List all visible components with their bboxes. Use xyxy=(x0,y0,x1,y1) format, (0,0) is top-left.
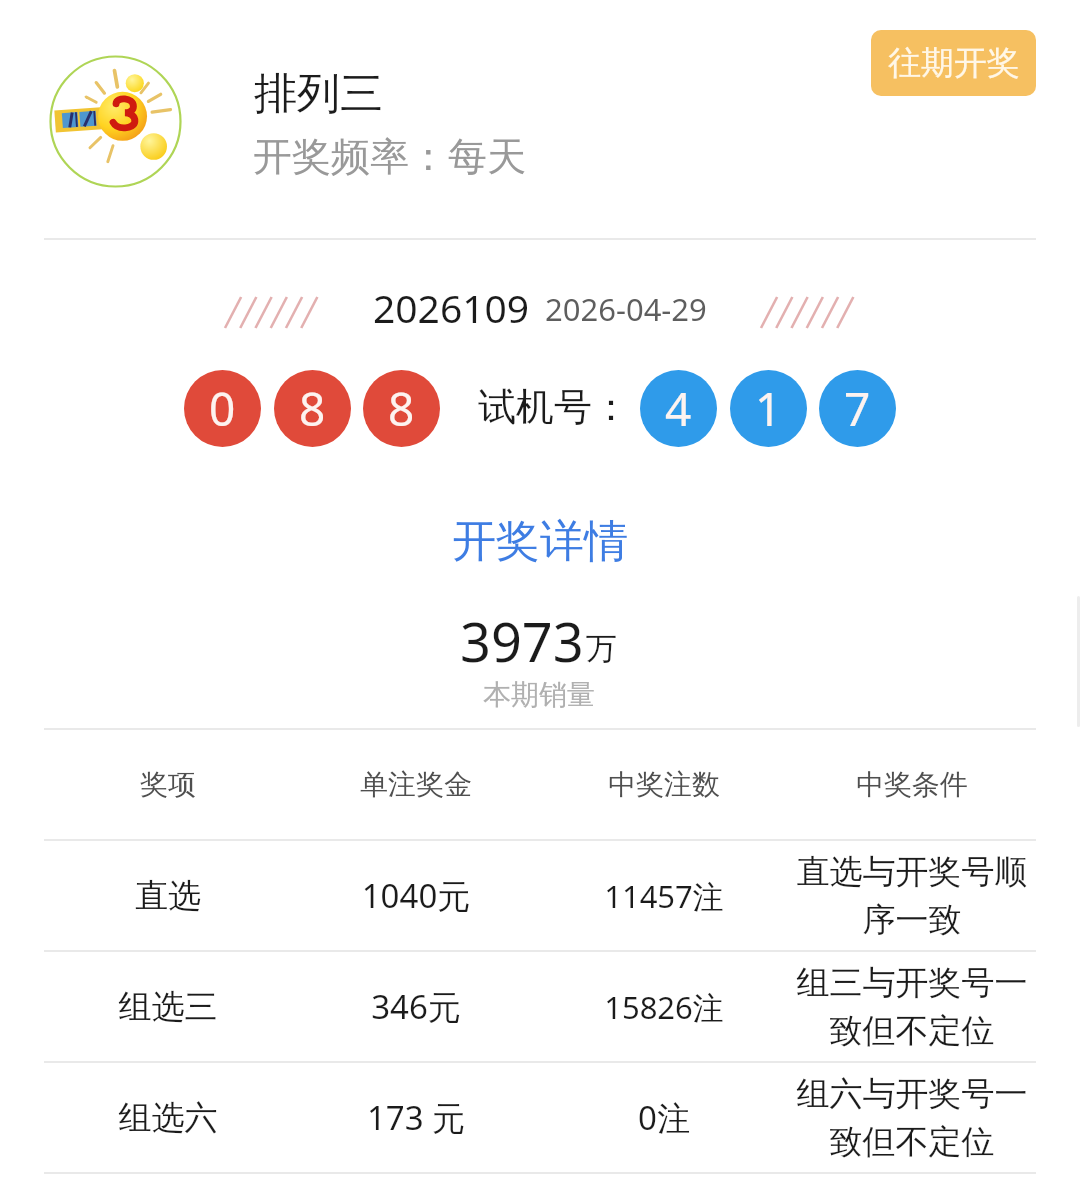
staticText: 组六与开奖号一致但不定位 xyxy=(793,1073,1031,1163)
other: 排列三 彩票图标 xyxy=(49,55,182,188)
staticText: 单注奖金 xyxy=(292,767,540,802)
button[interactable]: 往期开奖 xyxy=(871,30,1036,96)
button[interactable]: 排列三 彩票图标 xyxy=(44,20,644,220)
staticText: 万 xyxy=(586,629,617,668)
staticText: 7 xyxy=(844,377,871,440)
staticText: 试机号： xyxy=(478,383,630,431)
staticText: 奖项 xyxy=(44,767,292,802)
staticText: 15826注 xyxy=(540,986,788,1028)
staticText: 0注 xyxy=(540,1095,788,1140)
staticText: 开奖频率：每天 xyxy=(253,132,526,181)
staticText: 173 元 xyxy=(292,1095,540,1140)
staticText: 中奖条件 xyxy=(793,767,1031,802)
staticText: 往期开奖 xyxy=(888,42,1020,84)
staticText: 8 xyxy=(299,377,326,440)
staticText: 直选与开奖号顺序一致 xyxy=(793,851,1031,941)
staticText: 0 xyxy=(209,377,236,440)
staticText: 11457注 xyxy=(540,875,788,917)
staticText: 2026-04-29 xyxy=(545,288,707,330)
staticText: 1040元 xyxy=(292,873,540,918)
staticText: 直选 xyxy=(44,875,292,917)
staticText: 1 xyxy=(755,377,782,440)
staticText: 3973 xyxy=(460,604,584,678)
staticText: 本期销量 xyxy=(483,677,595,712)
staticText: 组选三 xyxy=(44,986,292,1028)
staticText: 组三与开奖号一致但不定位 xyxy=(793,962,1031,1052)
staticText: 2026109 xyxy=(373,281,530,334)
staticText: 组选六 xyxy=(44,1097,292,1139)
staticText: 中奖注数 xyxy=(540,767,788,802)
staticText: 346元 xyxy=(292,984,540,1029)
staticText: 8 xyxy=(388,377,415,440)
staticText: 开奖详情 xyxy=(452,514,628,569)
staticText: 排列三 xyxy=(254,67,383,121)
staticText: 4 xyxy=(665,377,692,440)
button[interactable]: 开奖详情 xyxy=(429,493,651,589)
